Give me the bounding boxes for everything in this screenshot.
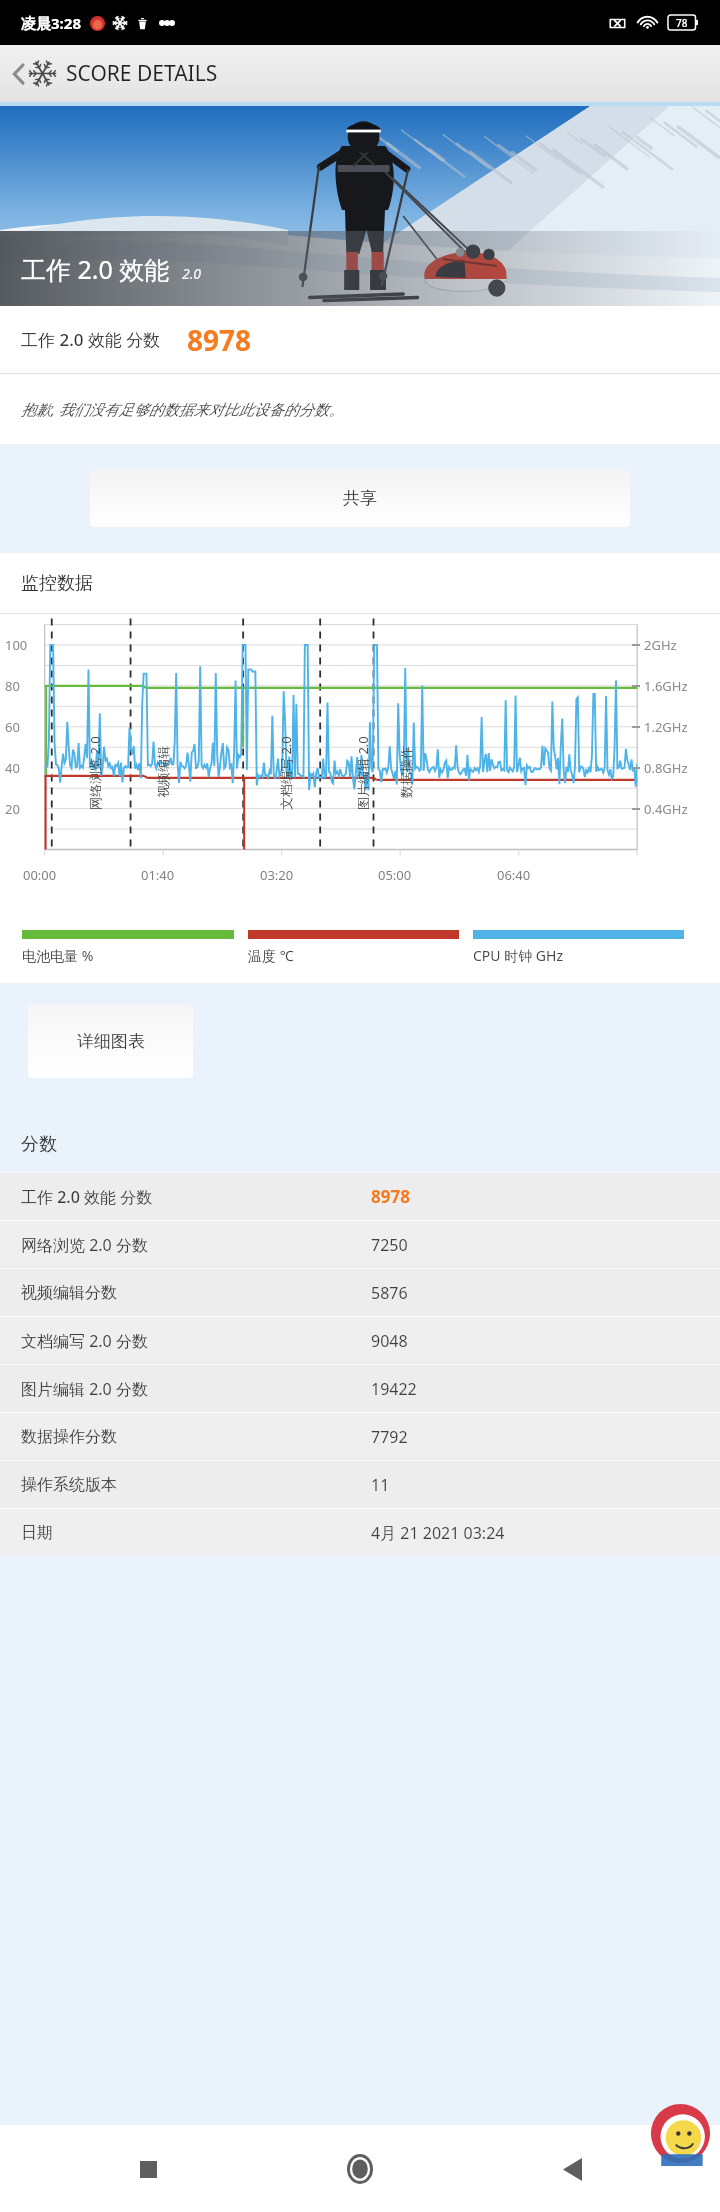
staticText: 工作 2.0 效能 分数 bbox=[21, 328, 161, 351]
staticText: 文档编写 2.0 分数 bbox=[21, 1330, 371, 1352]
staticText: 2.0 bbox=[182, 264, 202, 283]
staticText: SCORE DETAILS bbox=[66, 59, 218, 88]
staticText: 网络浏览 2.0 分数 bbox=[21, 1234, 371, 1256]
staticText: 0.4GHz bbox=[644, 800, 688, 818]
button[interactable]: 文档编写 2.0 分数 bbox=[0, 1317, 720, 1364]
button[interactable]: Home bbox=[332, 2141, 388, 2197]
staticText: 05:00 bbox=[378, 866, 412, 884]
staticText: 20 bbox=[5, 800, 20, 818]
staticText: 详细图表 bbox=[77, 1031, 145, 1052]
staticText: 7250 bbox=[371, 1234, 408, 1256]
staticText: 8978 bbox=[187, 321, 252, 359]
staticText: 80 bbox=[5, 677, 20, 695]
staticText: 图片编辑 2.0 bbox=[354, 736, 372, 810]
staticText: 监控数据 bbox=[21, 572, 93, 595]
staticText: 工作 2.0 效能 分数 bbox=[21, 1186, 371, 1208]
staticText: 视频编辑 bbox=[155, 746, 171, 798]
staticText: 4月 21 2021 03:24 bbox=[371, 1522, 505, 1544]
staticText: 操作系统版本 bbox=[21, 1475, 371, 1495]
button[interactable]: 视频编辑分数 bbox=[0, 1269, 720, 1316]
staticText: 7792 bbox=[371, 1426, 408, 1448]
staticText: 06:40 bbox=[497, 866, 531, 884]
staticText: 分数 bbox=[21, 1133, 57, 1156]
staticText: 9048 bbox=[371, 1330, 408, 1352]
staticText: 日期 bbox=[21, 1523, 371, 1543]
staticText: 网络浏览 2.0 bbox=[86, 736, 104, 810]
staticText: 电池电量 % bbox=[22, 946, 94, 965]
staticText: 8978 bbox=[371, 1185, 410, 1208]
staticText: 数据操作分数 bbox=[21, 1427, 371, 1447]
button[interactable]: 详细图表 bbox=[28, 1005, 193, 1078]
staticText: 00:00 bbox=[23, 866, 57, 884]
staticText: 0.8GHz bbox=[644, 759, 688, 777]
staticText: 5876 bbox=[371, 1282, 408, 1304]
staticText: 78 bbox=[676, 16, 688, 30]
staticText: 2GHz bbox=[644, 636, 677, 654]
staticText: 数据操作 bbox=[398, 746, 414, 798]
staticText: 100 bbox=[5, 636, 28, 654]
staticText: 11 bbox=[371, 1474, 390, 1496]
button[interactable]: 操作系统版本 bbox=[0, 1461, 720, 1508]
staticText: 图片编辑 2.0 分数 bbox=[21, 1378, 371, 1400]
staticText: 19422 bbox=[371, 1378, 417, 1400]
button[interactable]: Back bbox=[544, 2141, 600, 2197]
staticText: 视频编辑分数 bbox=[21, 1283, 371, 1303]
staticText: 文档编写 2.0 bbox=[277, 736, 295, 810]
staticText: 01:40 bbox=[141, 866, 175, 884]
button[interactable]: 日期 bbox=[0, 1509, 720, 1556]
button[interactable]: 共享 bbox=[90, 470, 630, 527]
staticText: 60 bbox=[5, 718, 20, 736]
staticText: 共享 bbox=[343, 488, 377, 509]
staticText: CPU 时钟 GHz bbox=[473, 946, 563, 965]
button[interactable]: Recent apps bbox=[120, 2141, 176, 2197]
button[interactable]: 工作 2.0 效能 分数 bbox=[0, 1173, 720, 1220]
staticText: 40 bbox=[5, 759, 20, 777]
staticText: 抱歉, 我们没有足够的数据来对比此设备的分数。 bbox=[21, 399, 344, 419]
button[interactable]: 数据操作分数 bbox=[0, 1413, 720, 1460]
button[interactable]: 图片编辑 2.0 分数 bbox=[0, 1365, 720, 1412]
staticText: 1.2GHz bbox=[644, 718, 688, 736]
staticText: 工作 2.0 效能 bbox=[21, 252, 170, 286]
staticText: 03:20 bbox=[260, 866, 294, 884]
staticText: 凌晨3:28 bbox=[21, 13, 81, 33]
button[interactable]: 网络浏览 2.0 分数 bbox=[0, 1221, 720, 1268]
button[interactable]: Back bbox=[6, 53, 224, 94]
staticText: 1.6GHz bbox=[644, 677, 688, 695]
staticText: 温度 ℃ bbox=[248, 946, 294, 965]
